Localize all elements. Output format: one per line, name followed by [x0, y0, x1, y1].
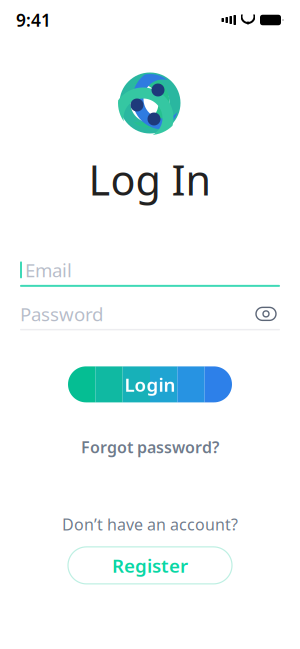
button[interactable]: Forgot password? [71, 430, 229, 464]
button[interactable]: Register [68, 547, 232, 584]
staticText: Password [20, 301, 103, 326]
button[interactable]: Login [68, 366, 232, 402]
staticText: Login [124, 372, 175, 397]
staticText: Register [112, 553, 188, 578]
button[interactable]: Show password [252, 301, 280, 327]
staticText: Log In [88, 152, 211, 207]
staticText: Email [25, 257, 72, 282]
staticText: 9:41 [16, 8, 51, 31]
staticText: Don’t have an account? [62, 514, 238, 535]
staticText: Forgot password? [81, 436, 219, 458]
